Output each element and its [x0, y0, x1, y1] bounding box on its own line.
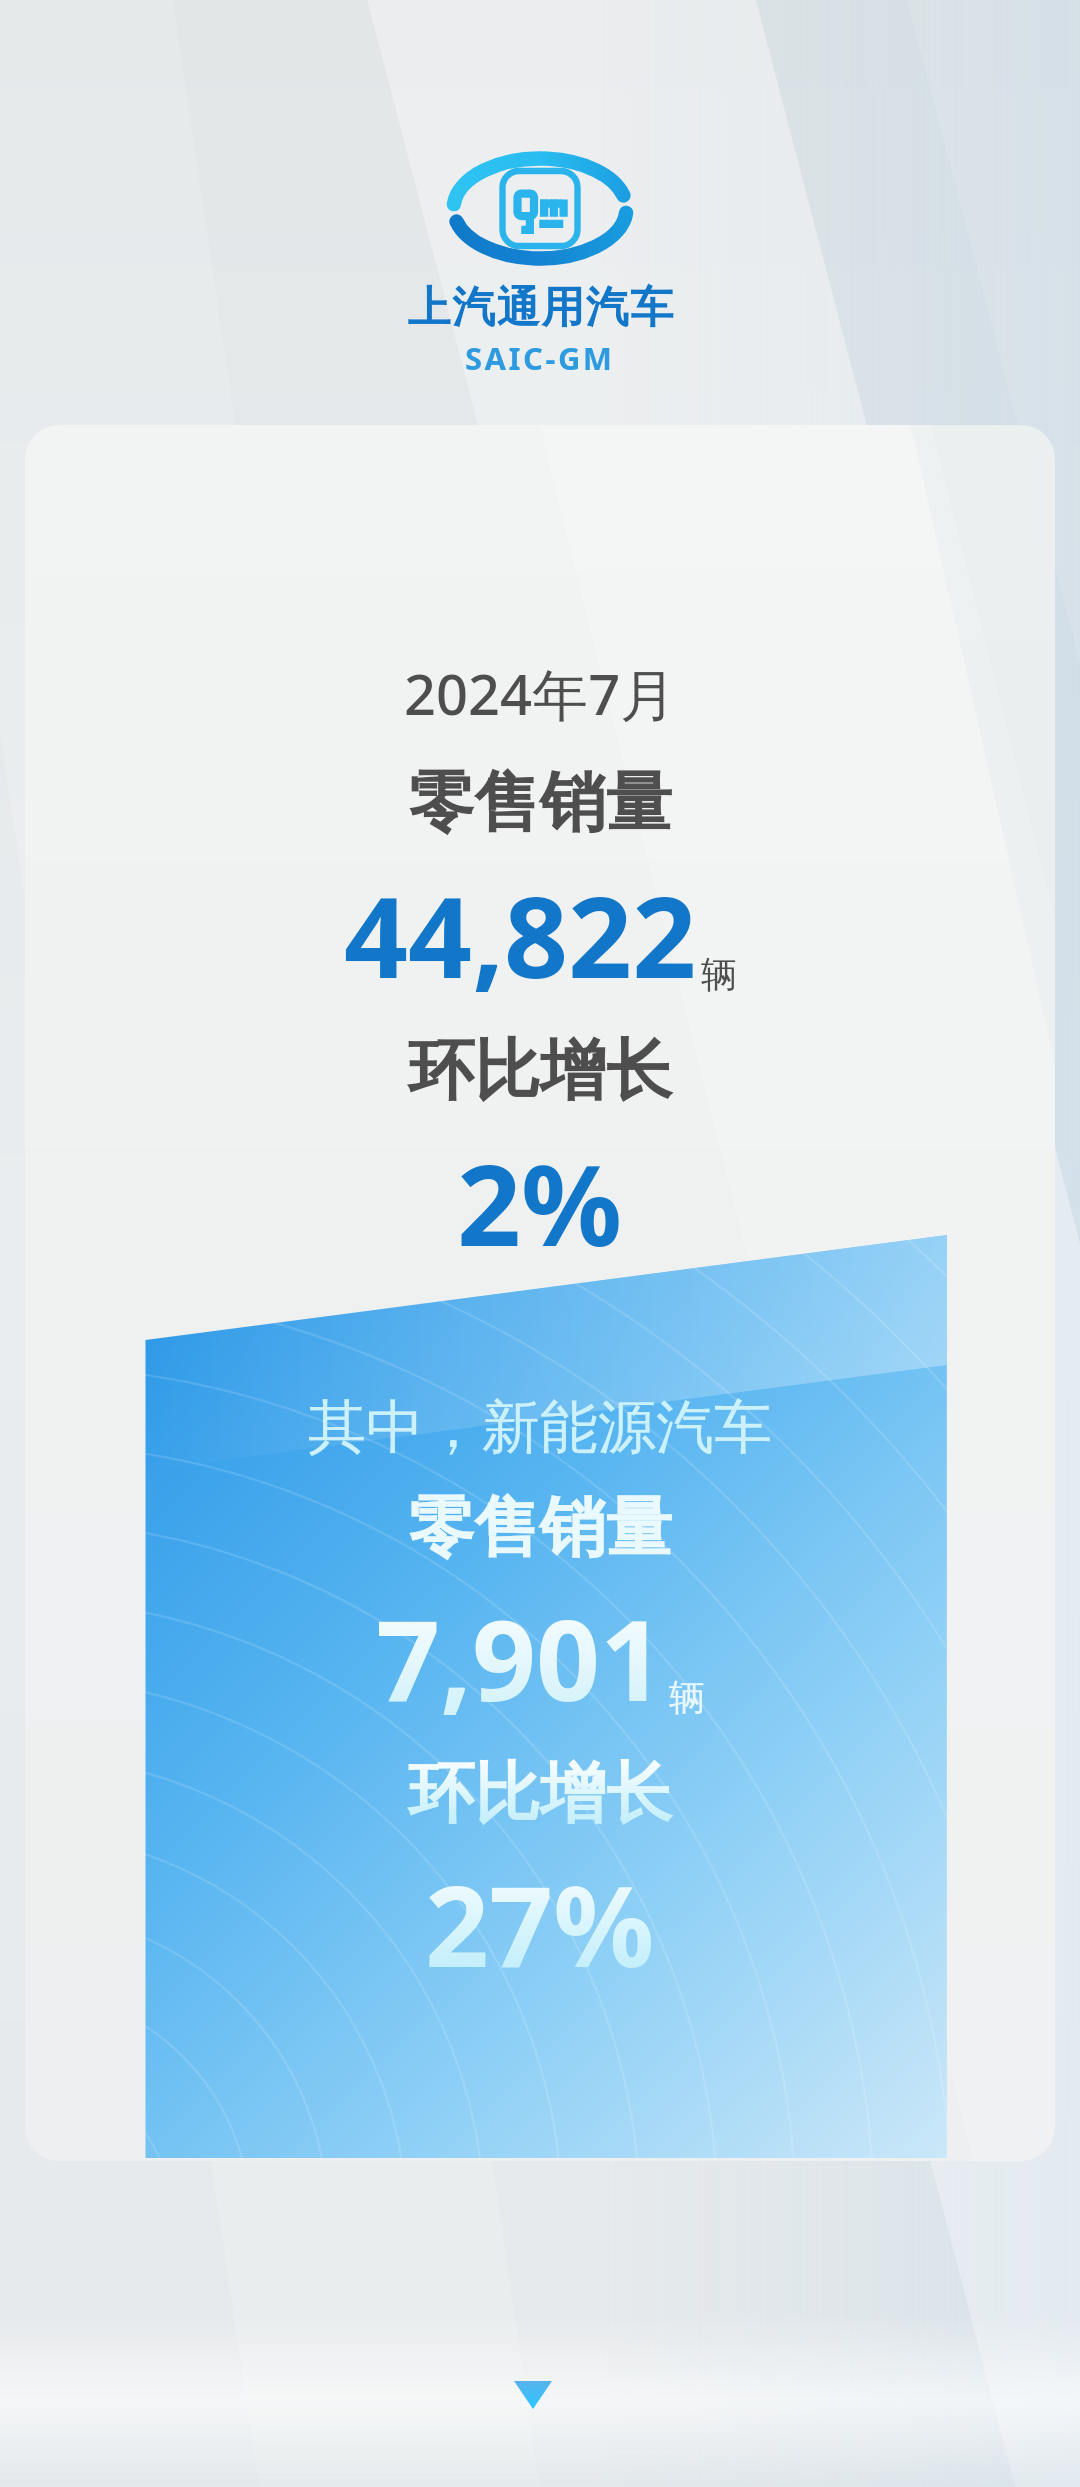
staticText: 环比增长: [408, 1029, 672, 1112]
staticText: 零售销量: [408, 1486, 672, 1569]
staticText: 上汽通用汽车: [407, 281, 674, 335]
staticText: 44,822: [344, 858, 697, 1011]
staticText: 环比增长: [408, 1752, 672, 1835]
staticText: 其中，新能源汽车: [308, 1391, 772, 1464]
staticText: 零售销量: [408, 761, 672, 844]
staticText: 2024年7月: [404, 655, 677, 731]
staticText: 7,901: [376, 1581, 665, 1734]
staticText: 2%: [457, 1126, 623, 1279]
staticText: SAIC-GM: [465, 337, 615, 379]
staticText: 辆: [701, 952, 737, 997]
staticText: 辆: [669, 1675, 705, 1720]
staticText: 27%: [425, 1847, 655, 2000]
button[interactable]: [25, 425, 1055, 2161]
button[interactable]: SAIC-GM logo: [445, 146, 635, 271]
button[interactable]: [25, 425, 1055, 2161]
